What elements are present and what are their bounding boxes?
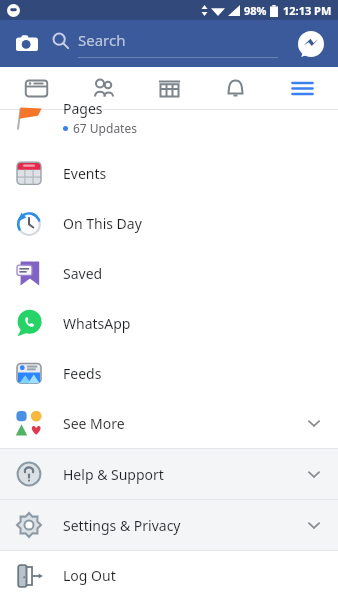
- button[interactable]: WhatsApp: [0, 298, 338, 348]
- button[interactable]: Messenger: [294, 27, 328, 61]
- staticText: 98%: [244, 3, 267, 18]
- button[interactable]: Menu: [272, 67, 332, 110]
- button[interactable]: Events: [0, 148, 338, 198]
- staticText: Settings & Privacy: [63, 516, 181, 535]
- button[interactable]: Marketplace: [139, 67, 199, 110]
- button[interactable]: Log Out: [0, 551, 338, 600]
- staticText: Pages: [63, 99, 103, 118]
- button[interactable]: Saved: [0, 248, 338, 298]
- staticText: WhatsApp: [63, 314, 131, 333]
- staticText: Events: [63, 164, 107, 183]
- button[interactable]: On This Day: [0, 198, 338, 248]
- staticText: 12:13 PM: [283, 3, 332, 18]
- staticText: See More: [63, 414, 125, 433]
- staticText: On This Day: [63, 214, 142, 233]
- staticText: Log Out: [63, 566, 116, 585]
- staticText: Search: [78, 30, 126, 50]
- button[interactable]: Notifications: [205, 67, 265, 110]
- staticText: 67 Updates: [73, 120, 137, 136]
- button[interactable]: See More: [0, 398, 338, 448]
- button[interactable]: Search: [52, 30, 288, 58]
- button[interactable]: News Feed: [6, 67, 66, 110]
- button[interactable]: Camera: [10, 27, 44, 61]
- staticText: Help & Support: [63, 465, 164, 484]
- button[interactable]: Feeds: [0, 348, 338, 398]
- button[interactable]: Friends: [73, 67, 133, 110]
- button[interactable]: Settings & Privacy: [0, 500, 338, 550]
- staticText: Saved: [63, 264, 103, 283]
- staticText: Feeds: [63, 364, 102, 383]
- button[interactable]: Help & Support: [0, 449, 338, 499]
